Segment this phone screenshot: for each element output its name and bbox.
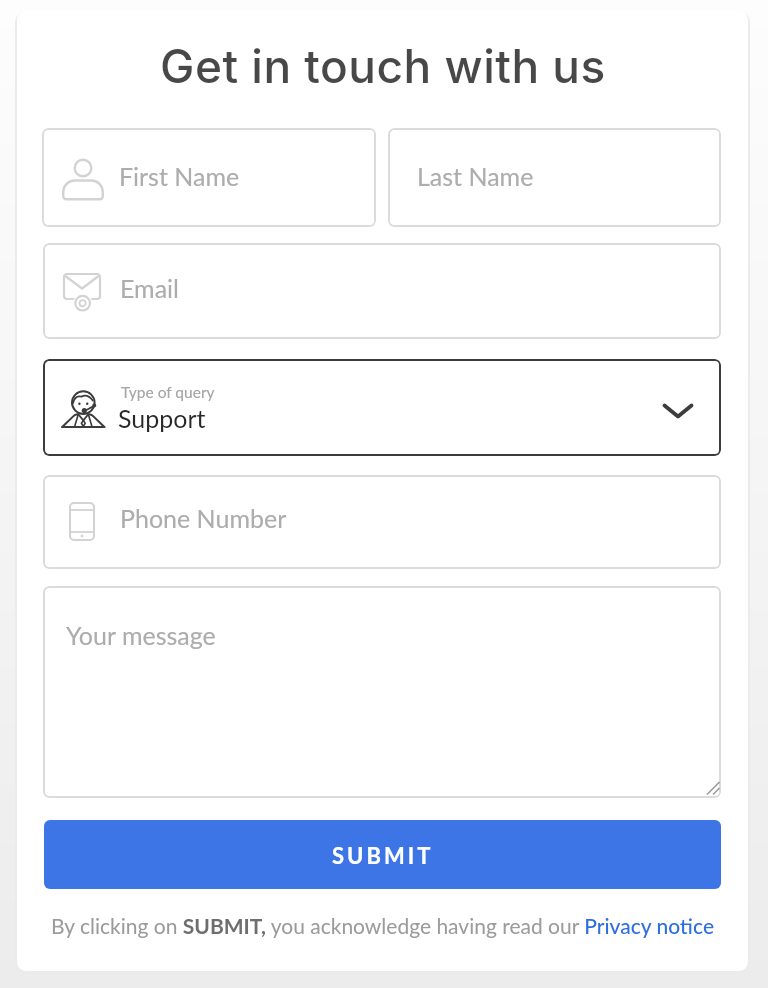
button[interactable] (42, 128, 376, 227)
staticText: Support (118, 403, 206, 433)
staticText: Email (120, 273, 179, 303)
button[interactable]: By clicking on SUBMIT, you acknowledge h… (51, 913, 715, 938)
button[interactable] (43, 475, 721, 569)
staticText: SUBMIT (332, 842, 434, 868)
button[interactable] (43, 586, 721, 798)
staticText: Last Name (417, 161, 534, 191)
button[interactable] (43, 359, 721, 456)
staticText: Your message (66, 620, 216, 650)
button[interactable]: SUBMIT (44, 820, 721, 889)
staticText: First Name (119, 161, 240, 191)
staticText: Phone Number (120, 503, 287, 533)
button[interactable] (388, 128, 721, 227)
staticText: Type of query (121, 383, 215, 402)
staticText: Get in touch with us (160, 38, 606, 94)
button[interactable] (43, 243, 721, 339)
